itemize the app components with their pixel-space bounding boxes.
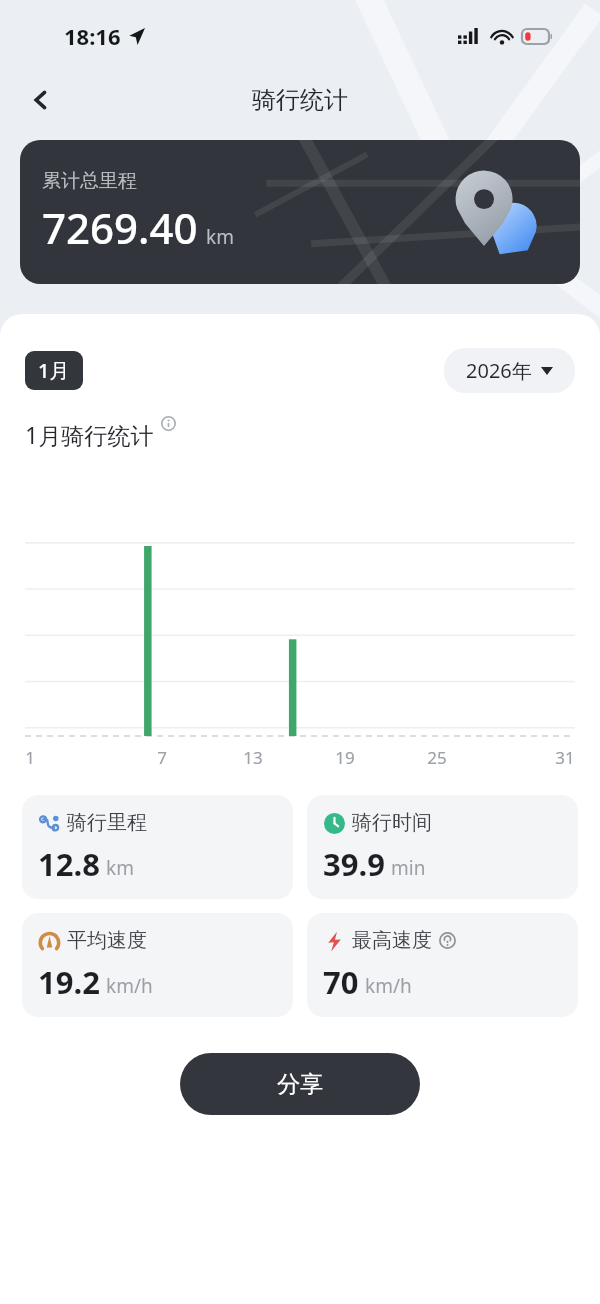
staticText: 2026年 [466, 357, 532, 384]
staticText: 13 [243, 746, 263, 769]
staticText: 18:16 [64, 21, 121, 51]
staticText: 7269.40 [42, 199, 198, 256]
button[interactable]: Info [161, 416, 176, 431]
button[interactable]: 分享 [180, 1053, 420, 1115]
staticText: km [206, 224, 234, 250]
staticText: 分享 [277, 1070, 323, 1099]
staticText: km/h [106, 973, 153, 999]
staticText: 19 [335, 746, 355, 769]
staticText: 骑行时间 [352, 810, 432, 835]
staticText: 最高速度 [352, 928, 432, 953]
staticText: 12.8 [38, 843, 100, 885]
button[interactable]: Help [439, 932, 456, 949]
staticText: 1月骑行统计 [25, 419, 154, 450]
staticText: 19.2 [38, 961, 100, 1003]
button[interactable]: 1月 [25, 351, 83, 390]
staticText: 骑行里程 [67, 810, 147, 835]
button[interactable]: Back [18, 77, 64, 123]
staticText: 1 [25, 746, 35, 769]
staticText: 1月 [38, 357, 70, 384]
staticText: 骑行统计 [252, 85, 348, 115]
staticText: km/h [365, 973, 412, 999]
button[interactable]: 骑行里程 [22, 795, 293, 899]
button[interactable]: 最高速度 [307, 913, 578, 1017]
staticText: min [391, 855, 426, 881]
staticText: 累计总里程 [42, 169, 137, 193]
button[interactable]: 骑行时间 [307, 795, 578, 899]
staticText: 平均速度 [67, 928, 147, 953]
staticText: 7 [157, 746, 167, 769]
button[interactable]: 累计总里程 [20, 140, 580, 284]
staticText: km [106, 855, 134, 881]
staticText: 70 [323, 961, 359, 1003]
staticText: 31 [555, 746, 575, 769]
staticText: 25 [427, 746, 447, 769]
staticText: 39.9 [323, 843, 385, 885]
button[interactable]: 平均速度 [22, 913, 293, 1017]
button[interactable]: 2026年 [444, 348, 575, 393]
